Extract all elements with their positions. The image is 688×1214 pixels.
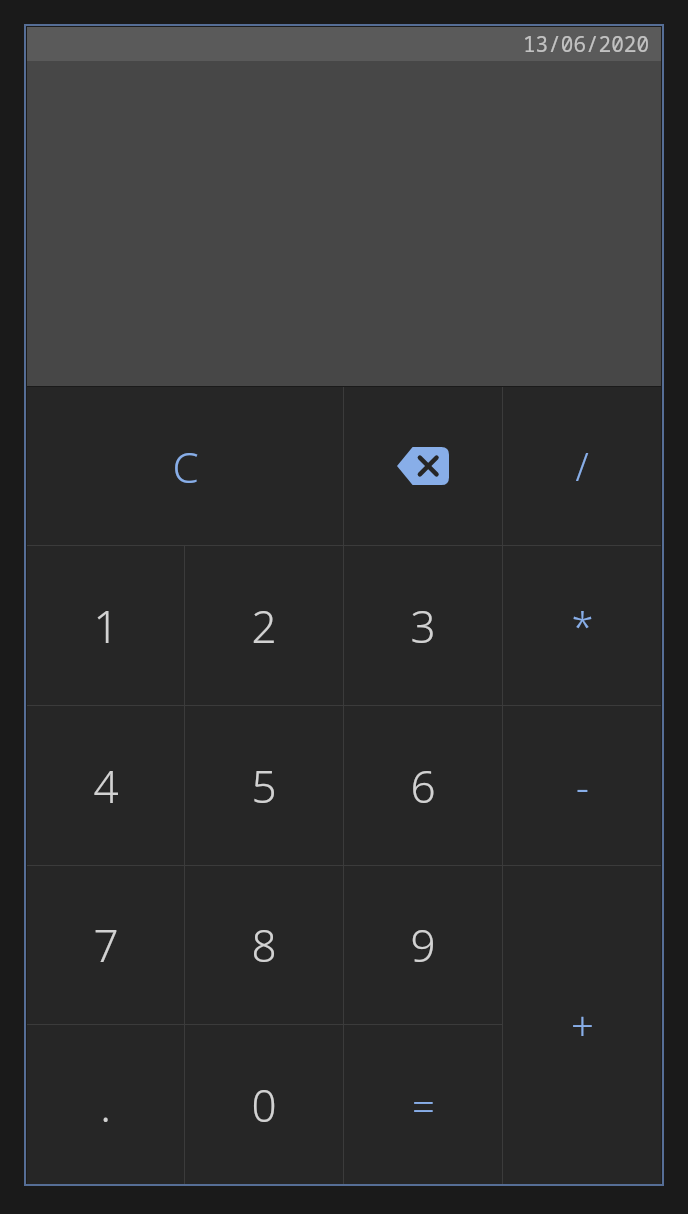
button[interactable]: 3 [344, 546, 502, 705]
button[interactable]: 6 [344, 706, 502, 865]
staticText: 0 [251, 1075, 277, 1135]
button[interactable]: 7 [27, 866, 184, 1024]
button[interactable]: = [344, 1025, 502, 1184]
button[interactable]: 2 [185, 546, 343, 705]
button[interactable]: 4 [27, 706, 184, 865]
staticText: 9 [410, 915, 436, 975]
button[interactable]: Backspace [344, 387, 502, 545]
button[interactable]: * [503, 546, 661, 705]
staticText: 5 [251, 756, 277, 816]
staticText: 8 [251, 915, 277, 975]
staticText: / [575, 440, 589, 492]
staticText: 13/06/2020 [523, 30, 649, 59]
staticText: + [571, 998, 594, 1052]
button[interactable]: - [503, 706, 661, 865]
button[interactable]: 1 [27, 546, 184, 705]
staticText: 1 [93, 596, 119, 656]
button[interactable]: 9 [344, 866, 502, 1024]
staticText: 2 [251, 596, 277, 656]
staticText: 4 [93, 756, 119, 816]
button[interactable]: C [27, 387, 343, 545]
button[interactable]: . [27, 1025, 184, 1184]
staticText: - [576, 759, 589, 813]
button[interactable]: + [503, 866, 661, 1184]
button[interactable]: 8 [185, 866, 343, 1024]
staticText: C [172, 438, 199, 495]
staticText: 7 [93, 915, 119, 975]
button[interactable]: 5 [185, 706, 343, 865]
staticText: 3 [410, 596, 436, 656]
button[interactable]: 0 [185, 1025, 343, 1184]
staticText: = [412, 1078, 435, 1132]
staticText: . [100, 1075, 111, 1135]
staticText: 6 [410, 756, 436, 816]
button[interactable]: / [503, 387, 661, 545]
staticText: * [571, 599, 594, 653]
